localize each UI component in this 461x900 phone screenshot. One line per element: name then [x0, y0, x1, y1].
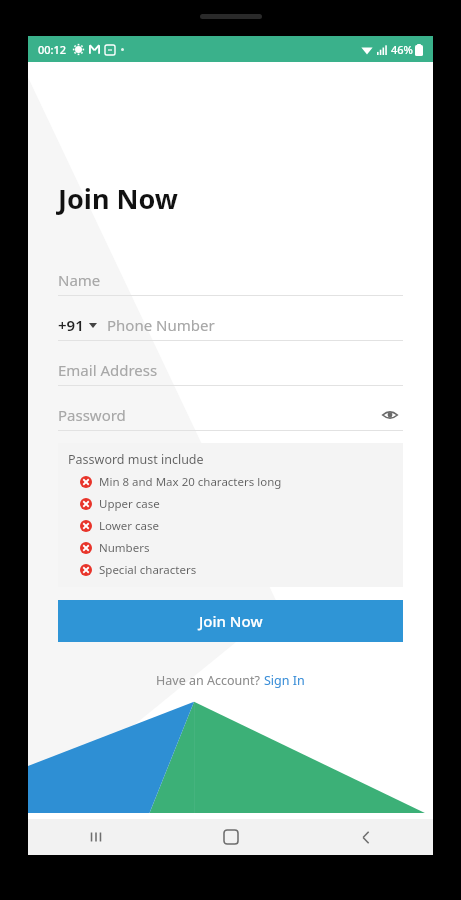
staticText: Join Now — [58, 180, 178, 217]
button[interactable]: Have an Account? — [58, 672, 403, 689]
staticText: 46% — [391, 42, 413, 57]
button[interactable]: Email Address — [58, 355, 403, 386]
button[interactable]: Back — [298, 819, 433, 855]
staticText: Email Address — [58, 360, 158, 380]
staticText: Special characters — [99, 562, 197, 578]
staticText: Numbers — [99, 540, 150, 556]
button[interactable]: Recents — [28, 819, 163, 855]
button[interactable]: Home — [163, 819, 298, 855]
staticText: Min 8 and Max 20 characters long — [99, 474, 282, 490]
staticText: Lower case — [99, 518, 159, 534]
staticText: 00:12 — [38, 42, 67, 57]
staticText: Sign In — [264, 672, 305, 689]
button[interactable]: Name — [58, 265, 403, 296]
button[interactable]: Password — [58, 400, 403, 431]
staticText: Join Now — [199, 611, 263, 631]
staticText: Have an Account? — [156, 672, 264, 689]
button[interactable]: Join Now — [58, 600, 403, 642]
staticText: Password — [58, 405, 126, 425]
staticText: Password must include — [68, 451, 204, 468]
staticText: Phone Number — [107, 315, 215, 335]
staticText: +91 — [58, 315, 84, 335]
button[interactable]: +91 — [58, 310, 403, 341]
button[interactable]: Show password — [377, 402, 403, 428]
staticText: Upper case — [99, 496, 160, 512]
staticText: Name — [58, 270, 101, 290]
